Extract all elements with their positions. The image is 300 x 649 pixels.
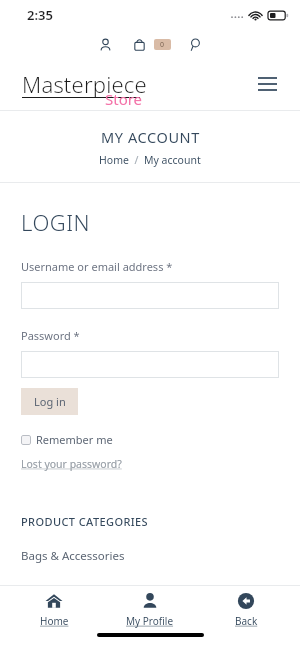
staticText: 2:35: [27, 6, 53, 24]
staticText: 0: [160, 40, 165, 50]
button[interactable]: Back: [204, 589, 288, 631]
button[interactable]: Search: [183, 31, 209, 57]
staticText: Home: [40, 614, 69, 628]
staticText: MY ACCOUNT: [101, 127, 200, 147]
button[interactable]: 0: [154, 39, 171, 50]
staticText: Back: [235, 614, 258, 628]
button[interactable]: Account: [92, 31, 118, 57]
staticText: Masterpiece: [22, 69, 147, 99]
staticText: LOGIN: [21, 207, 91, 237]
button[interactable]: Masterpiece: [22, 69, 147, 100]
button[interactable]: Home: [12, 589, 96, 631]
button[interactable]: Menu: [250, 67, 284, 101]
staticText: PRODUCT CATEGORIES: [21, 514, 149, 529]
button[interactable]: Home: [99, 153, 129, 167]
button[interactable]: Lost your password?: [21, 457, 122, 471]
staticText: Store: [105, 89, 143, 109]
button[interactable]: Bags & Accessories: [21, 548, 125, 564]
staticText: Password *: [21, 328, 80, 343]
button[interactable]: [21, 282, 279, 309]
button[interactable]: [21, 351, 279, 378]
staticText: My Profile: [126, 614, 174, 628]
button[interactable]: Cart: [126, 31, 152, 57]
staticText: Remember me: [36, 432, 113, 447]
staticText: /: [129, 153, 144, 167]
staticText: Log in: [34, 394, 66, 409]
staticText: My account: [144, 153, 201, 167]
button[interactable]: My Profile: [108, 589, 192, 631]
staticText: Username or email address *: [21, 259, 173, 274]
button[interactable]: Log in: [21, 388, 78, 415]
button[interactable]: Remember me: [21, 432, 113, 447]
